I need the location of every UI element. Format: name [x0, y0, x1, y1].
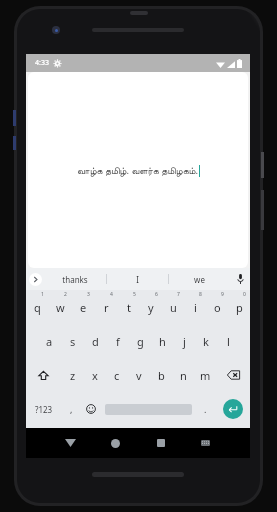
button[interactable]: i	[184, 290, 206, 324]
button[interactable]: p	[228, 290, 250, 324]
staticText: .	[204, 403, 207, 415]
staticText: ,	[70, 403, 73, 415]
button[interactable]: ,	[61, 392, 81, 426]
staticText: வாழ்க தமிழ். வளர்க தமிழகம்.	[77, 164, 199, 177]
staticText: 3	[87, 291, 90, 298]
staticText: k	[203, 334, 209, 349]
button[interactable]: Recents	[138, 428, 183, 458]
staticText: 4:33	[35, 58, 49, 68]
staticText: 7	[177, 291, 180, 298]
button[interactable]: k	[195, 324, 217, 358]
staticText: e	[80, 300, 87, 315]
staticText: q	[34, 300, 41, 315]
button[interactable]: I	[107, 268, 168, 290]
button[interactable]: c	[106, 358, 128, 392]
button[interactable]: b	[150, 358, 172, 392]
button[interactable]: Shift	[26, 358, 61, 392]
staticText: a	[46, 334, 53, 349]
button[interactable]: Emoji	[81, 392, 101, 426]
button[interactable]: m	[194, 358, 216, 392]
staticText: 9	[221, 291, 224, 298]
button[interactable]: ?123	[26, 392, 61, 426]
staticText: I	[136, 274, 139, 285]
button[interactable]: h	[151, 324, 173, 358]
button[interactable]: a	[38, 324, 61, 358]
staticText: f	[116, 334, 120, 349]
staticText: s	[70, 334, 76, 349]
staticText: z	[70, 368, 76, 383]
staticText: p	[236, 300, 243, 315]
button[interactable]: u	[162, 290, 184, 324]
staticText: d	[92, 334, 99, 349]
button[interactable]: l	[217, 324, 239, 358]
button[interactable]: j	[173, 324, 195, 358]
button[interactable]: f	[107, 324, 129, 358]
button[interactable]: Space	[101, 392, 195, 426]
staticText: t	[127, 300, 131, 315]
button[interactable]: v	[128, 358, 150, 392]
staticText: h	[159, 334, 166, 349]
button[interactable]: we	[169, 268, 230, 290]
staticText: thanks	[62, 274, 88, 285]
button[interactable]: Back	[48, 428, 93, 458]
staticText: 6	[155, 291, 158, 298]
staticText: b	[158, 368, 165, 383]
staticText: 8	[199, 291, 202, 298]
button[interactable]: Voice input	[230, 268, 250, 290]
button[interactable]: z	[61, 358, 84, 392]
button[interactable]: Expand suggestions	[26, 268, 44, 290]
button[interactable]: e	[72, 290, 95, 324]
button[interactable]: q	[26, 290, 49, 324]
button[interactable]: o	[206, 290, 228, 324]
staticText: ?123	[35, 404, 53, 415]
button[interactable]: r	[95, 290, 118, 324]
button[interactable]: t	[118, 290, 140, 324]
button[interactable]: x	[84, 358, 106, 392]
staticText: u	[170, 300, 177, 315]
staticText: m	[200, 368, 211, 383]
staticText: w	[56, 300, 65, 315]
button[interactable]: y	[140, 290, 162, 324]
staticText: i	[194, 300, 197, 315]
button[interactable]: s	[61, 324, 84, 358]
staticText: g	[137, 334, 144, 349]
staticText: 0	[243, 291, 246, 298]
staticText: j	[183, 334, 186, 349]
staticText: 5	[133, 291, 136, 298]
staticText: c	[114, 368, 120, 383]
button[interactable]: thanks	[44, 268, 106, 290]
button[interactable]: w	[49, 290, 72, 324]
button[interactable]: d	[84, 324, 107, 358]
button[interactable]: g	[129, 324, 151, 358]
staticText: o	[214, 300, 221, 315]
staticText: 1	[41, 291, 44, 298]
staticText: y	[148, 300, 154, 315]
button[interactable]: Home	[93, 428, 138, 458]
staticText: we	[194, 274, 205, 285]
staticText: v	[136, 368, 142, 383]
button[interactable]: வாழ்க தமிழ். வளர்க தமிழகம்.	[28, 72, 248, 268]
staticText: 4	[110, 291, 113, 298]
staticText: 2	[64, 291, 67, 298]
button[interactable]: Backspace	[216, 358, 250, 392]
staticText: x	[92, 368, 98, 383]
button[interactable]: Enter	[215, 392, 250, 426]
staticText: l	[227, 334, 230, 349]
button[interactable]: .	[195, 392, 215, 426]
staticText: r	[104, 300, 109, 315]
staticText: n	[180, 368, 187, 383]
button[interactable]: n	[172, 358, 194, 392]
button[interactable]: Switch keyboard	[183, 428, 228, 458]
